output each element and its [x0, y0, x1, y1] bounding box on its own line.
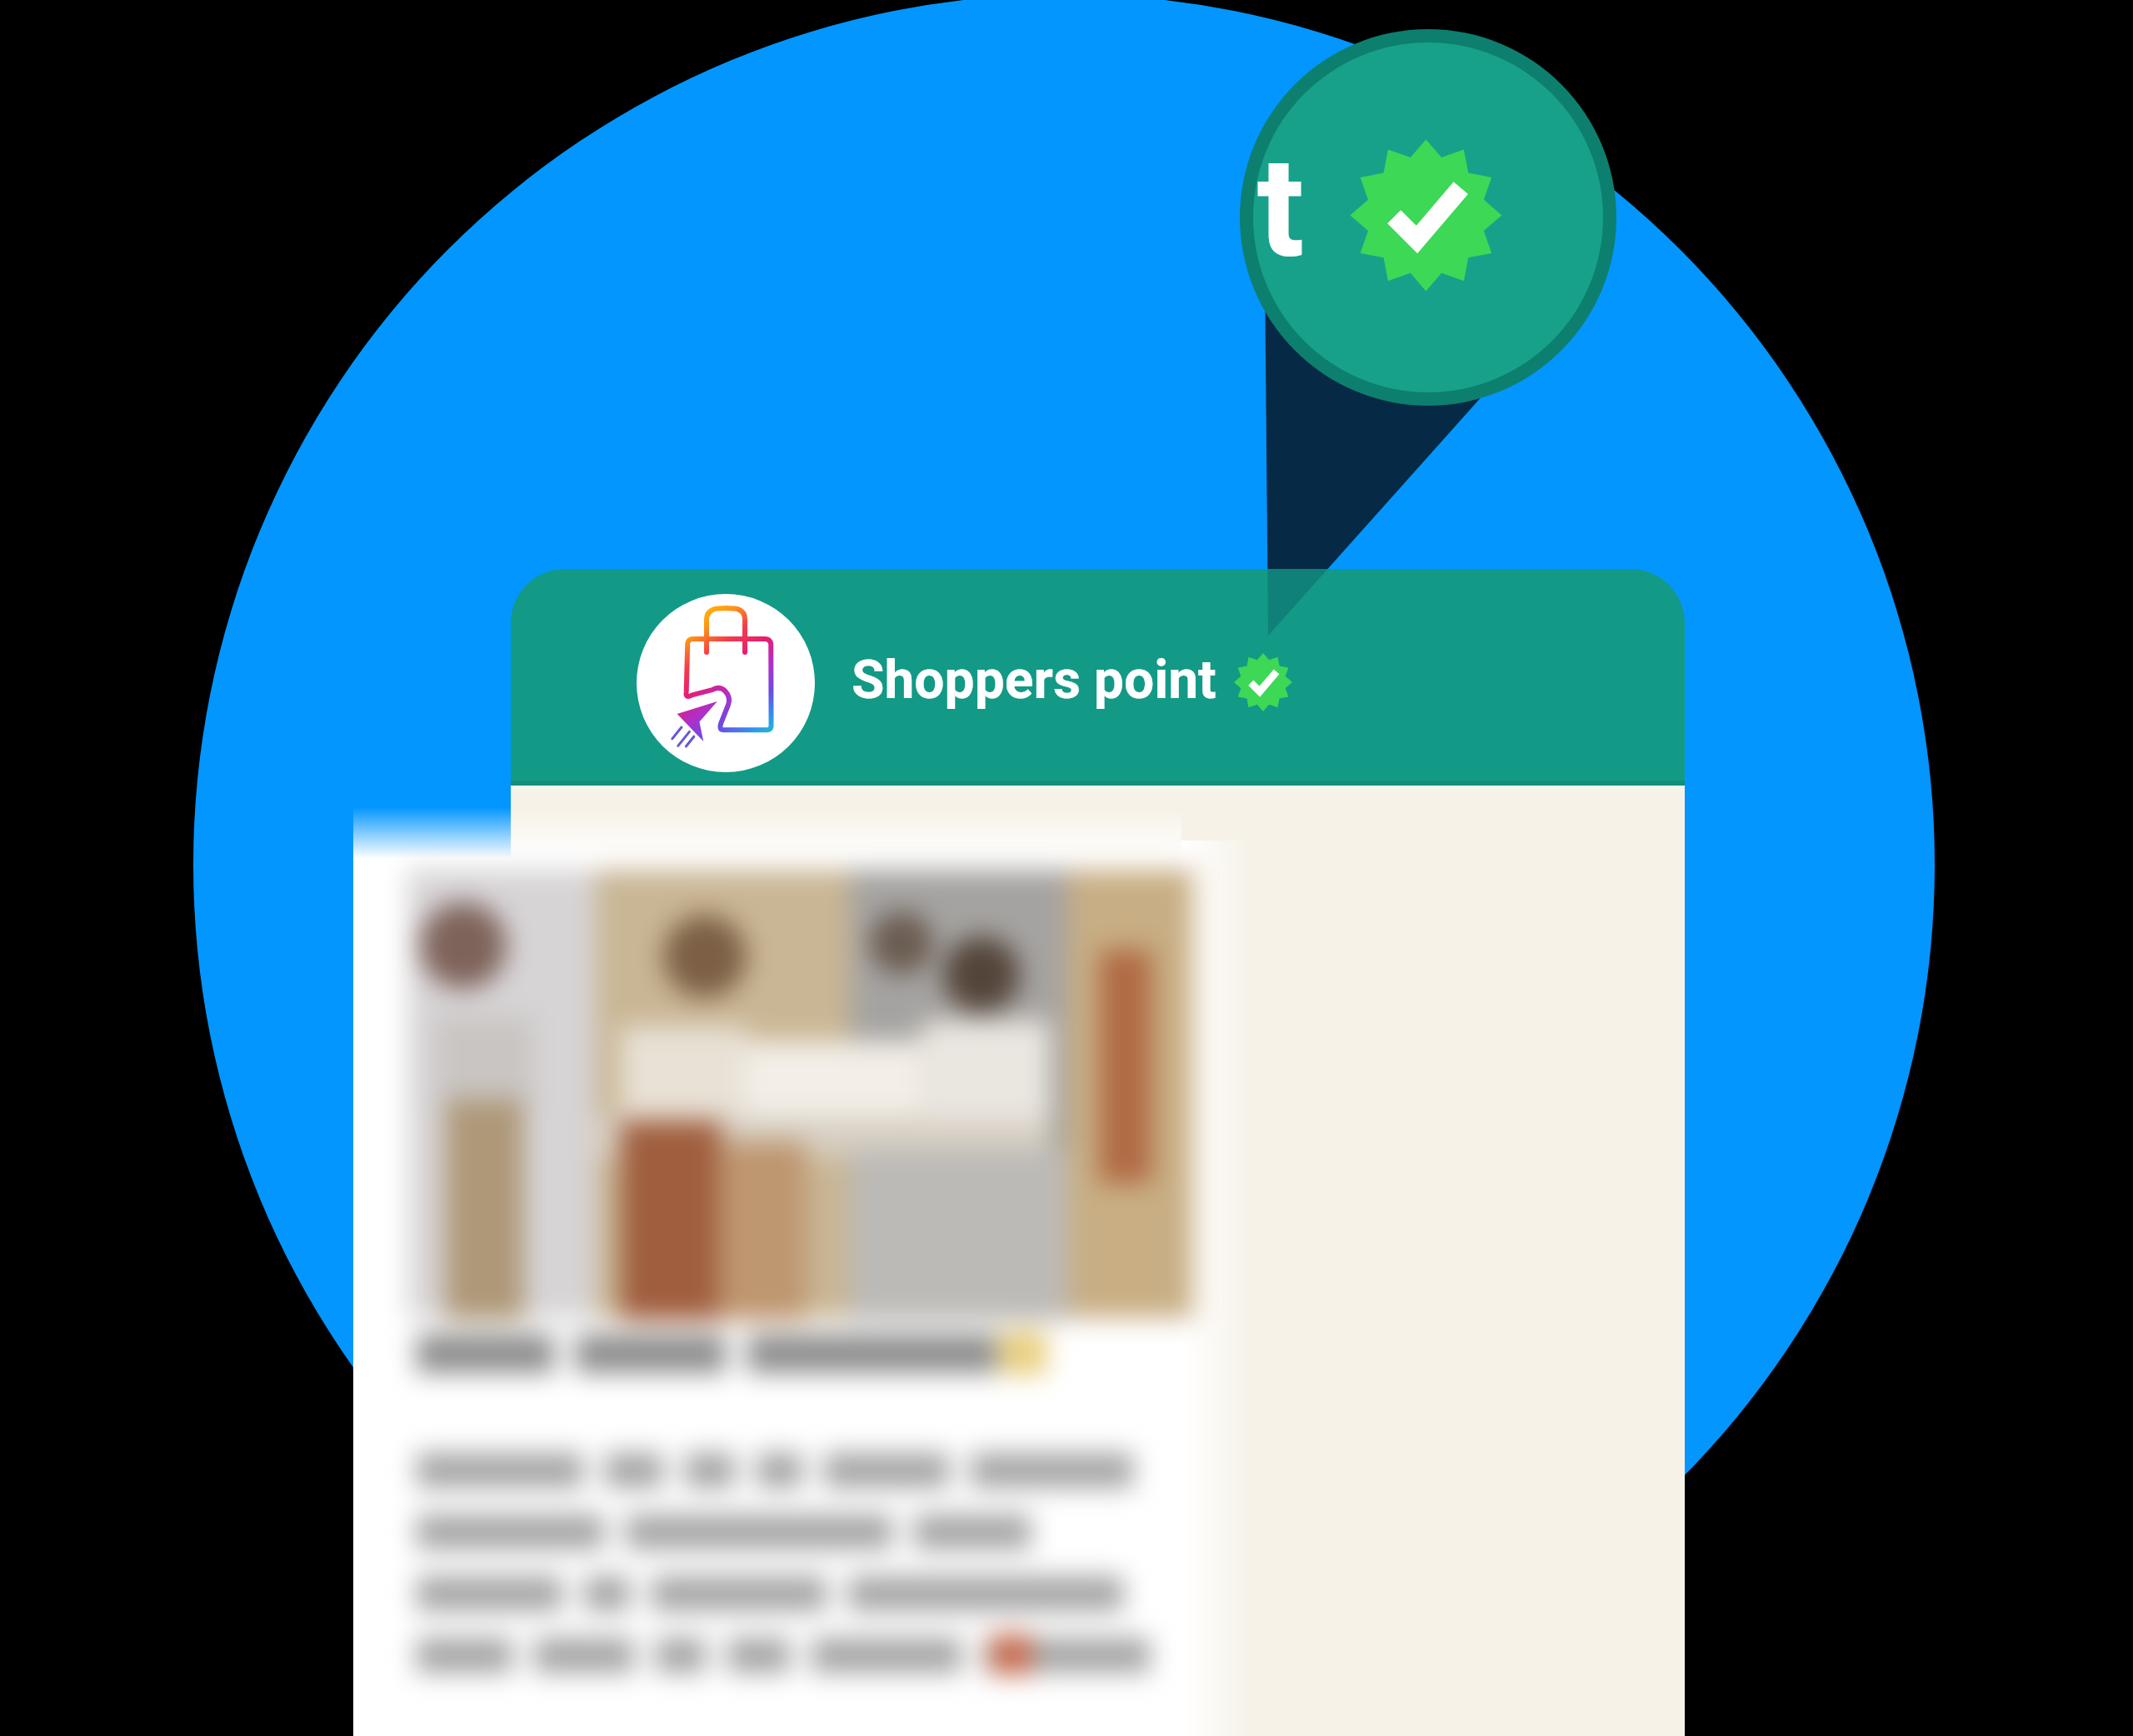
- button[interactable]: Shoppers point, verified account: [511, 569, 1685, 786]
- button[interactable]: Open post: [353, 812, 1231, 1736]
- button[interactable]: Verified badge: [1240, 29, 1616, 406]
- button[interactable]: Shoppers point profile photo: [637, 594, 815, 772]
